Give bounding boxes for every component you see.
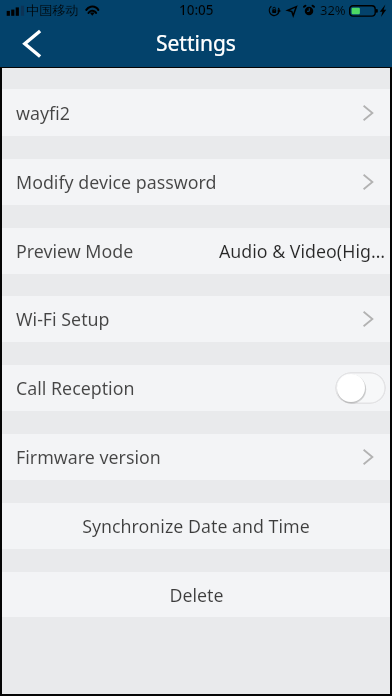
staticText: Firmware version	[16, 445, 161, 469]
button[interactable]: Modify device password	[2, 159, 390, 205]
button[interactable]: Synchronize Date and Time	[2, 503, 390, 549]
staticText: Wi-Fi Setup	[16, 307, 110, 331]
button[interactable]: wayfi2	[2, 89, 390, 136]
staticText: Synchronize Date and Time	[82, 514, 310, 538]
button[interactable]: Back	[0, 20, 62, 67]
staticText: 10:05	[179, 1, 214, 19]
staticText: wayfi2	[16, 101, 70, 125]
button[interactable]: Delete	[2, 572, 390, 617]
staticText: Delete	[169, 583, 224, 607]
staticText: Call Reception	[16, 376, 135, 400]
button[interactable]: Call Reception	[2, 365, 390, 411]
staticText: Modify device password	[16, 170, 217, 194]
button[interactable]: Call Reception	[335, 372, 386, 404]
staticText: 中国移动	[26, 2, 79, 19]
button[interactable]: Wi-Fi Setup	[2, 296, 390, 342]
button[interactable]: Firmware version	[2, 434, 390, 480]
staticText: 32%	[320, 1, 346, 19]
staticText: Audio & Video(High Resolution)	[217, 239, 385, 263]
button[interactable]: Preview Mode	[2, 228, 390, 274]
staticText: Settings	[156, 29, 236, 58]
staticText: Preview Mode	[16, 239, 134, 263]
